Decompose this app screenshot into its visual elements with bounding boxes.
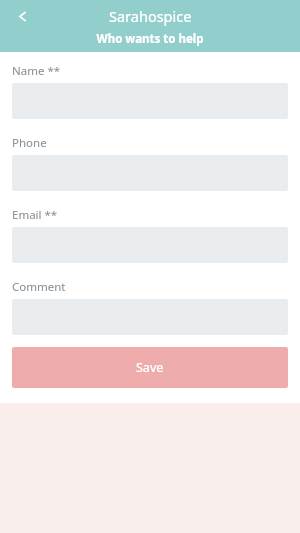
staticText: Sarahospice — [109, 6, 192, 26]
staticText: Save — [136, 359, 164, 376]
staticText: Who wants to help — [0, 31, 300, 47]
staticText: Phone — [12, 135, 47, 151]
button[interactable]: Back — [8, 2, 36, 30]
staticText: Comment — [12, 279, 66, 295]
staticText: Email ** — [12, 207, 58, 223]
staticText: Name ** — [12, 63, 61, 79]
button[interactable]: Save — [12, 347, 288, 388]
